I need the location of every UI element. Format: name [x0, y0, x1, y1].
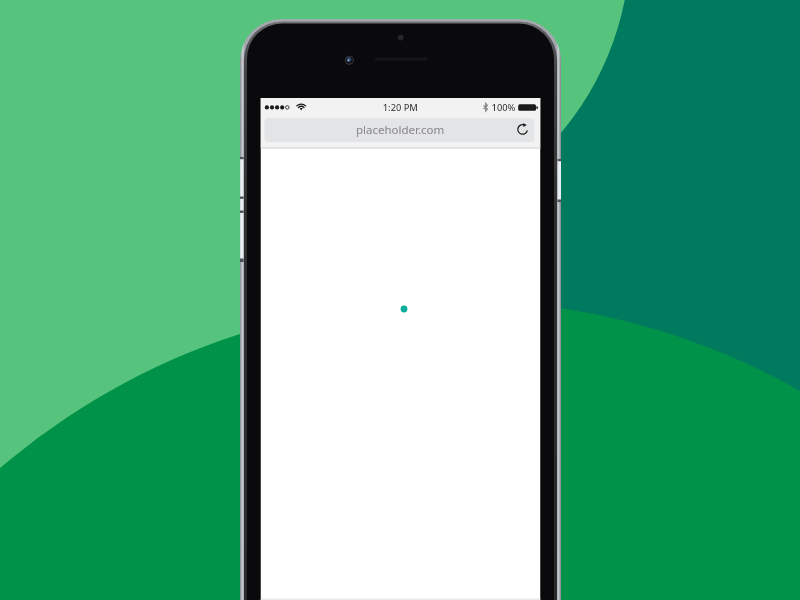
button[interactable]: Volume up — [236, 199, 244, 211]
button[interactable]: Volume down — [236, 213, 244, 259]
button[interactable] — [265, 118, 535, 142]
button[interactable]: Ring / silent switch — [236, 157, 244, 197]
button[interactable]: Power — [556, 159, 564, 202]
button[interactable]: Reload page — [512, 119, 533, 140]
button[interactable]: Loading placeholder.com — [261, 149, 541, 598]
